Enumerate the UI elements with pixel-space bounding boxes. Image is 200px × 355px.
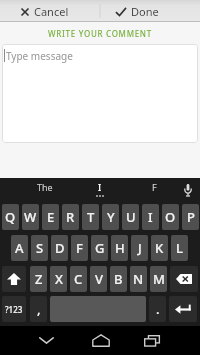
staticText: W bbox=[24, 208, 37, 226]
staticText: S bbox=[36, 239, 44, 257]
staticText: Cancel bbox=[34, 4, 69, 19]
staticText: , bbox=[37, 300, 41, 318]
button[interactable]: U bbox=[122, 204, 139, 230]
button[interactable]: Done bbox=[100, 0, 200, 22]
button[interactable]: N bbox=[130, 266, 147, 292]
button[interactable] bbox=[183, 184, 193, 197]
staticText: L bbox=[176, 239, 183, 257]
button[interactable] bbox=[31, 326, 61, 355]
button[interactable]: Type message bbox=[2, 44, 198, 143]
button[interactable] bbox=[137, 326, 167, 355]
button[interactable]: P bbox=[182, 204, 199, 230]
button[interactable]: I bbox=[142, 204, 159, 230]
button[interactable]: C bbox=[70, 266, 87, 292]
staticText: J bbox=[138, 239, 142, 257]
staticText: V bbox=[95, 270, 103, 288]
button[interactable]: ?123 bbox=[2, 296, 26, 322]
button[interactable]: The bbox=[37, 181, 53, 193]
staticText: U bbox=[126, 208, 136, 226]
staticText: K bbox=[155, 239, 164, 257]
button[interactable]: , bbox=[30, 296, 47, 322]
staticText: A bbox=[15, 239, 24, 257]
staticText: ?123 bbox=[5, 304, 23, 315]
button[interactable]: L bbox=[171, 235, 188, 261]
button[interactable]: A bbox=[11, 235, 28, 261]
button[interactable]: O bbox=[162, 204, 179, 230]
staticText: M bbox=[153, 270, 165, 288]
staticText: N bbox=[133, 270, 144, 288]
button[interactable]: V bbox=[90, 266, 107, 292]
button[interactable]: F bbox=[71, 235, 88, 261]
staticText: WRITE YOUR COMMENT bbox=[48, 28, 152, 39]
staticText: R bbox=[66, 208, 75, 226]
staticText: Done bbox=[131, 4, 159, 19]
button[interactable]: H bbox=[111, 235, 128, 261]
staticText: X bbox=[55, 270, 63, 288]
button[interactable]: I bbox=[98, 181, 102, 193]
button[interactable] bbox=[170, 266, 198, 292]
button[interactable]: J bbox=[131, 235, 148, 261]
staticText: Type message bbox=[6, 49, 73, 63]
button[interactable]: Cancel bbox=[0, 0, 100, 22]
button[interactable]: E bbox=[42, 204, 59, 230]
button[interactable]: X bbox=[50, 266, 67, 292]
staticText: Q bbox=[5, 208, 16, 226]
staticText: H bbox=[115, 239, 125, 257]
staticText: O bbox=[165, 208, 176, 226]
button[interactable] bbox=[2, 266, 26, 292]
button[interactable]: . bbox=[149, 296, 166, 322]
button[interactable]: S bbox=[31, 235, 48, 261]
button[interactable]: F bbox=[152, 181, 157, 193]
staticText: D bbox=[55, 239, 65, 257]
staticText: I bbox=[148, 208, 153, 226]
button[interactable]: Q bbox=[2, 204, 19, 230]
button[interactable]: D bbox=[51, 235, 68, 261]
staticText: B bbox=[114, 270, 123, 288]
button[interactable]: G bbox=[91, 235, 108, 261]
button[interactable]: K bbox=[151, 235, 168, 261]
button[interactable]: W bbox=[22, 204, 39, 230]
button[interactable]: Z bbox=[30, 266, 47, 292]
staticText: P bbox=[187, 208, 195, 226]
staticText: E bbox=[47, 208, 55, 226]
button[interactable]: R bbox=[62, 204, 79, 230]
button[interactable] bbox=[169, 296, 197, 322]
staticText: Y bbox=[107, 208, 115, 226]
staticText: F bbox=[76, 239, 83, 257]
staticText: C bbox=[74, 270, 83, 288]
button[interactable]: Y bbox=[102, 204, 119, 230]
button[interactable]: T bbox=[82, 204, 99, 230]
staticText: . bbox=[156, 300, 160, 318]
button[interactable]: M bbox=[150, 266, 167, 292]
staticText: G bbox=[95, 239, 105, 257]
button[interactable] bbox=[86, 326, 116, 355]
staticText: Z bbox=[35, 270, 43, 288]
button[interactable]: B bbox=[110, 266, 127, 292]
staticText: T bbox=[87, 208, 95, 226]
